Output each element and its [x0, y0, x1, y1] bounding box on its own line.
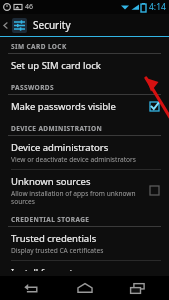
button[interactable]: Unchecked — [148, 184, 161, 197]
button[interactable]: Make passwords visible — [0, 95, 169, 118]
button[interactable]: Unknown sources — [0, 170, 169, 211]
staticText: 46 — [25, 2, 34, 12]
staticText: CREDENTIAL STORAGE — [11, 215, 90, 224]
button[interactable]: Trusted credentials — [0, 227, 169, 260]
staticText: PASSWORDS — [11, 83, 54, 92]
staticText: Trusted credentials — [11, 232, 97, 245]
staticText: Allow installation of apps from unknown … — [11, 189, 136, 206]
staticText: Security — [33, 18, 71, 32]
button[interactable]: Checked — [148, 100, 161, 113]
staticText: SIM CARD LOCK — [11, 42, 67, 51]
staticText: Make passwords visible — [11, 100, 116, 113]
button[interactable]: Back — [12, 276, 52, 300]
staticText: Display trusted CA certificates — [11, 246, 104, 255]
staticText: Device administrators — [11, 141, 109, 154]
staticText: Unknown sources — [11, 175, 91, 188]
staticText: Install from storage — [11, 266, 99, 271]
staticText: DEVICE ADMINISTRATION — [11, 124, 103, 133]
button[interactable]: Home — [65, 276, 105, 300]
staticText: 4:14 — [149, 1, 166, 13]
button[interactable]: Recent apps — [117, 276, 157, 300]
button[interactable]: Install from storage — [0, 261, 169, 276]
other: Settings — [12, 18, 27, 33]
button[interactable]: Set up SIM card lock — [0, 54, 169, 77]
button[interactable]: Device administrators — [0, 136, 169, 169]
button[interactable]: Back — [0, 14, 169, 36]
staticText: Set up SIM card lock — [11, 59, 101, 72]
other: Back — [2, 22, 9, 29]
staticText: View or deactivate device administrators — [11, 155, 136, 164]
